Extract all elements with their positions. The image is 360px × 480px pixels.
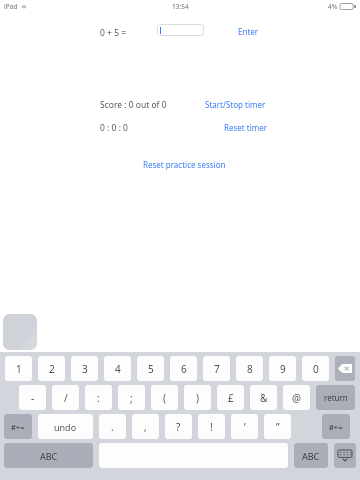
button[interactable]: (: [151, 385, 178, 410]
button[interactable]: ’: [231, 414, 258, 439]
staticText: 3: [82, 362, 88, 376]
staticText: Reset practice session: [143, 159, 226, 170]
staticText: #+=: [329, 422, 343, 432]
button[interactable]: £: [217, 385, 244, 410]
staticText: 0: [313, 362, 319, 376]
button[interactable]: ABC: [4, 443, 93, 468]
button[interactable]: 6: [170, 356, 197, 381]
staticText: &: [260, 391, 268, 405]
button[interactable]: &: [250, 385, 277, 410]
button[interactable]: 4: [104, 356, 131, 381]
button[interactable]: 9: [269, 356, 296, 381]
button[interactable]: ,: [132, 414, 159, 439]
staticText: ABC: [302, 450, 320, 462]
staticText: ”: [276, 420, 280, 434]
staticText: ’: [244, 420, 246, 434]
staticText: 13:54: [172, 2, 189, 11]
staticText: 5: [148, 362, 154, 376]
staticText: 9: [280, 362, 286, 376]
button[interactable]: #+=: [4, 414, 32, 439]
staticText: ABC: [40, 450, 58, 462]
staticText: ,: [144, 420, 147, 434]
staticText: (: [163, 391, 166, 405]
staticText: Reset timer: [224, 122, 268, 133]
staticText: ?: [176, 420, 181, 434]
button[interactable]: Enter: [238, 26, 259, 37]
staticText: 2: [49, 362, 55, 376]
staticText: :: [97, 391, 100, 405]
button[interactable]: #+=: [322, 414, 350, 439]
button[interactable]: Start/Stop timer: [205, 99, 266, 110]
staticText: £: [228, 391, 234, 405]
button[interactable]: 8: [236, 356, 263, 381]
staticText: ): [196, 391, 199, 405]
button[interactable]: undo: [38, 414, 93, 439]
staticText: 1: [16, 362, 22, 376]
button[interactable]: 7: [203, 356, 230, 381]
staticText: Score : 0 out of 0: [100, 99, 167, 111]
button[interactable]: ?: [165, 414, 192, 439]
staticText: 8: [247, 362, 253, 376]
button[interactable]: 2: [38, 356, 65, 381]
button[interactable]: Hide keyboard: [334, 443, 356, 468]
button[interactable]: 0: [302, 356, 329, 381]
button[interactable]: -: [19, 385, 46, 410]
button[interactable]: 1: [5, 356, 32, 381]
button[interactable]: ): [184, 385, 211, 410]
button[interactable]: ;: [118, 385, 145, 410]
button[interactable]: ”: [264, 414, 291, 439]
button[interactable]: return: [316, 385, 355, 410]
staticText: 0 + 5 =: [100, 27, 127, 39]
staticText: /: [64, 391, 68, 405]
staticText: 6: [181, 362, 187, 376]
button[interactable]: 5: [137, 356, 164, 381]
button[interactable]: Backspace: [335, 356, 355, 381]
button[interactable]: Reset timer: [224, 122, 268, 133]
staticText: !: [210, 420, 213, 434]
staticText: 4: [115, 362, 121, 376]
staticText: #+=: [11, 422, 25, 432]
button[interactable]: .: [99, 414, 126, 439]
button[interactable]: ABC: [294, 443, 328, 468]
button[interactable]: [157, 24, 204, 36]
button[interactable]: !: [198, 414, 225, 439]
button[interactable]: /: [52, 385, 79, 410]
staticText: -: [31, 391, 35, 405]
button[interactable]: 3: [71, 356, 98, 381]
staticText: iPad: [4, 2, 18, 11]
button[interactable]: Reset practice session: [143, 159, 226, 170]
button[interactable]: :: [85, 385, 112, 410]
staticText: .: [111, 420, 114, 434]
staticText: 7: [214, 362, 220, 376]
staticText: Enter: [238, 26, 259, 37]
staticText: 4%: [328, 2, 338, 11]
staticText: 0 : 0 : 0: [100, 122, 128, 134]
staticText: @: [292, 391, 301, 405]
staticText: return: [324, 392, 348, 403]
button[interactable]: @: [283, 385, 310, 410]
staticText: Start/Stop timer: [205, 99, 266, 110]
button[interactable]: [3, 314, 37, 350]
staticText: ;: [130, 391, 133, 405]
staticText: undo: [54, 421, 77, 433]
